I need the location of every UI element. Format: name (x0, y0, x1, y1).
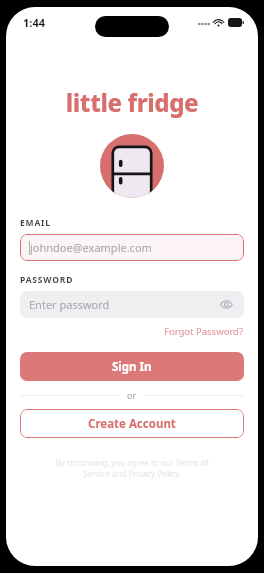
staticText: Enter password (29, 297, 110, 312)
staticText: johndoe@example.com (30, 240, 152, 255)
staticText: Forgot Password? (164, 325, 244, 338)
button[interactable]: Create Account (20, 409, 244, 438)
staticText: Create Account (88, 416, 176, 432)
button[interactable]: johndoe@example.com (20, 234, 244, 261)
button[interactable]: Sign In (20, 352, 244, 381)
button[interactable]: Show password (218, 296, 235, 313)
staticText: 1:44 (23, 15, 45, 30)
staticText: EMAIL (20, 217, 51, 229)
button[interactable]: Forgot Password? (164, 325, 244, 338)
staticText: By continuing, you agree to our Terms of… (44, 457, 220, 479)
button[interactable]: Enter password (20, 291, 244, 318)
staticText: or (127, 389, 137, 401)
staticText: Sign In (112, 359, 152, 375)
staticText: little fridge (6, 86, 258, 119)
staticText: PASSWORD (20, 274, 74, 286)
